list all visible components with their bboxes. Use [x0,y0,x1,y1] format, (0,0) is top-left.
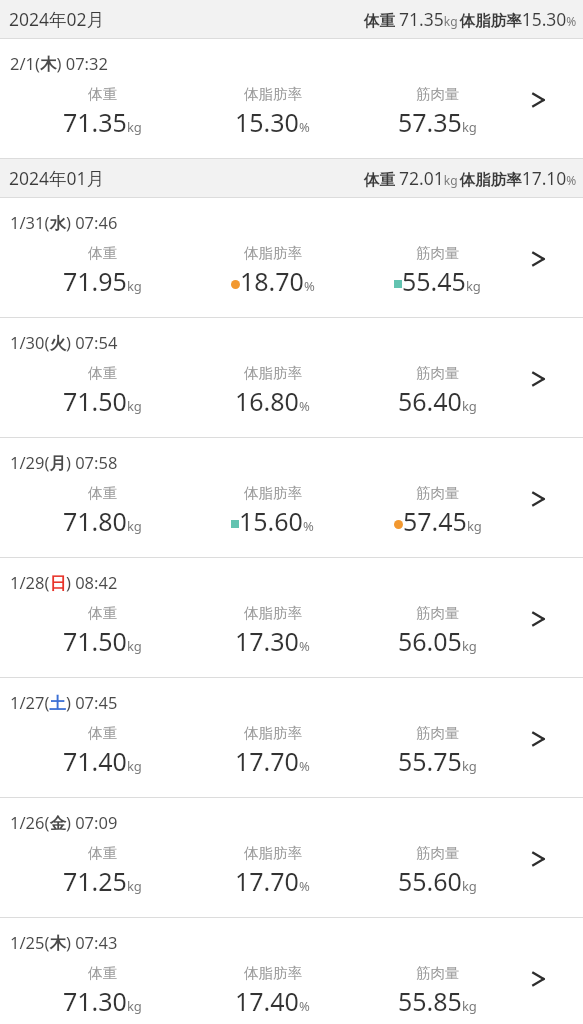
button[interactable]: 2024年02月 [0,0,583,38]
staticText: 筋肉量 [416,364,460,382]
staticText: 1/28(日) 08:42 [10,571,118,594]
staticText: 体脂肪率 [244,844,302,862]
staticText: 1/27(土) 07:45 [10,691,118,714]
staticText: 筋肉量 [416,844,460,862]
other: Open detail [528,246,554,272]
staticText: 55.45kg [402,264,481,298]
staticText: 体重 [88,844,117,862]
staticText: 体脂肪率 [244,724,302,742]
staticText: 1/25(木) 07:43 [10,931,118,954]
staticText: 体脂肪率 [244,85,302,103]
staticText: 56.40kg [398,384,477,418]
staticText: 1/29(月) 07:58 [10,451,118,474]
staticText: 56.05kg [398,624,477,658]
other: Open detail [528,486,554,512]
staticText: 体脂肪率 [244,244,302,262]
staticText: 体脂肪率 [244,484,302,502]
staticText: 17.30% [235,624,310,658]
staticText: 体重 [88,85,117,103]
staticText: 71.95kg [63,264,142,298]
staticText: 体脂肪率 [244,604,302,622]
staticText: 1/30(火) 07:54 [10,331,118,354]
other: Open detail [528,966,554,992]
staticText: 体重 72.01kg 体脂肪率17.10% [364,166,577,190]
other: Open detail [528,87,554,113]
button[interactable]: 1/28(日) 08:42 [0,558,583,677]
button[interactable]: 1/31(水) 07:46 [0,198,583,317]
staticText: 71.50kg [63,384,142,418]
staticText: 71.50kg [63,624,142,658]
button[interactable]: 2024年01月 [0,159,583,197]
staticText: 体脂肪率 [244,964,302,982]
staticText: 体重 [88,244,117,262]
staticText: 71.80kg [63,504,142,538]
staticText: 2/1(木) 07:32 [10,52,108,75]
button[interactable]: 1/25(木) 07:43 [0,918,583,1024]
staticText: 体重 [88,484,117,502]
staticText: 1/26(金) 07:09 [10,811,118,834]
staticText: 15.60% [239,504,314,538]
staticText: 71.25kg [63,864,142,898]
staticText: 71.30kg [63,984,142,1018]
button[interactable]: 1/27(土) 07:45 [0,678,583,797]
staticText: 71.40kg [63,744,142,778]
staticText: 体重 [88,364,117,382]
other: Open detail [528,366,554,392]
staticText: 57.45kg [403,504,482,538]
staticText: 55.85kg [398,984,477,1018]
staticText: 筋肉量 [416,85,460,103]
staticText: 体重 71.35kg 体脂肪率15.30% [364,7,577,31]
staticText: 体重 [88,604,117,622]
staticText: 2024年02月 [9,7,105,31]
staticText: 体重 [88,964,117,982]
staticText: 17.40% [235,984,310,1018]
staticText: 体脂肪率 [244,364,302,382]
staticText: 55.60kg [398,864,477,898]
button[interactable]: 1/30(火) 07:54 [0,318,583,437]
staticText: 筋肉量 [416,244,460,262]
staticText: 筋肉量 [416,484,460,502]
staticText: 筋肉量 [416,604,460,622]
other: Open detail [528,606,554,632]
staticText: 57.35kg [398,105,477,139]
staticText: 筋肉量 [416,724,460,742]
staticText: 55.75kg [398,744,477,778]
staticText: 2024年01月 [9,166,105,190]
staticText: 体重 [88,724,117,742]
staticText: 1/31(水) 07:46 [10,211,118,234]
staticText: 筋肉量 [416,964,460,982]
staticText: 17.70% [235,744,310,778]
staticText: 15.30% [235,105,310,139]
button[interactable]: 2/1(木) 07:32 [0,39,583,158]
other: Open detail [528,846,554,872]
button[interactable]: 1/29(月) 07:58 [0,438,583,557]
staticText: 18.70% [240,264,315,298]
button[interactable]: 1/26(金) 07:09 [0,798,583,917]
other: Open detail [528,726,554,752]
staticText: 16.80% [235,384,310,418]
staticText: 71.35kg [63,105,142,139]
staticText: 17.70% [235,864,310,898]
